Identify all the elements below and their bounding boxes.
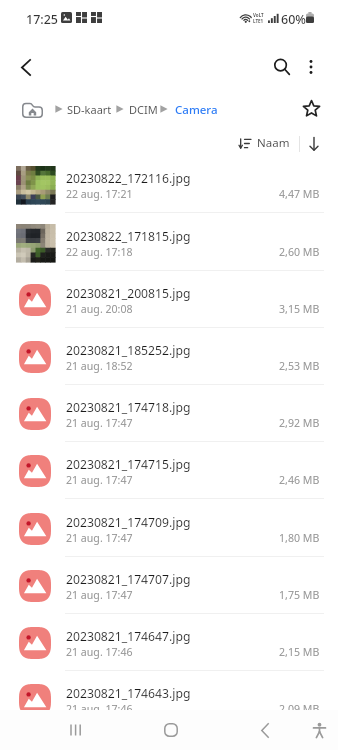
staticText: 2,53 MB xyxy=(279,359,320,373)
button[interactable]: 20230821_174715.jpg xyxy=(0,442,338,499)
button[interactable]: Sort direction xyxy=(300,130,328,158)
staticText: 20230821_174647.jpg xyxy=(66,628,191,645)
button[interactable]: Naam xyxy=(236,132,293,154)
staticText: 21 aug. 17:47 xyxy=(66,473,133,487)
button[interactable]: 20230821_200815.jpg xyxy=(0,271,338,328)
button[interactable]: 20230821_174643.jpg xyxy=(0,671,338,710)
button[interactable]: More options xyxy=(291,47,331,87)
staticText: 22 aug. 17:18 xyxy=(66,245,133,259)
staticText: 21 aug. 17:46 xyxy=(66,702,133,710)
staticText: 4,47 MB xyxy=(279,187,320,201)
staticText: 2,60 MB xyxy=(279,245,320,259)
button[interactable]: Home folder xyxy=(18,97,47,121)
staticText: 20230822_172116.jpg xyxy=(66,170,191,187)
staticText: 2,09 MB xyxy=(279,702,320,710)
button[interactable]: 20230822_172116.jpg xyxy=(0,156,338,213)
staticText: 21 aug. 17:47 xyxy=(66,531,133,545)
button[interactable]: 20230822_171815.jpg xyxy=(0,214,338,271)
staticText: 20230821_174643.jpg xyxy=(66,685,191,702)
staticText: 60% xyxy=(281,11,306,28)
staticText: DCIM xyxy=(129,102,158,117)
button[interactable]: Home xyxy=(156,715,186,745)
staticText: 21 aug. 17:46 xyxy=(66,645,133,659)
staticText: LTE1 xyxy=(253,18,264,23)
button[interactable]: 20230821_174709.jpg xyxy=(0,500,338,557)
staticText: 20230821_174707.jpg xyxy=(66,571,191,588)
button[interactable]: Back xyxy=(250,715,280,745)
staticText: 20230821_185252.jpg xyxy=(66,342,191,359)
staticText: 1,75 MB xyxy=(279,588,320,602)
button[interactable]: Recent apps xyxy=(61,715,91,745)
button[interactable]: 20230821_185252.jpg xyxy=(0,328,338,385)
staticText: 21 aug. 17:47 xyxy=(66,588,133,602)
button[interactable]: 20230821_174707.jpg xyxy=(0,557,338,614)
staticText: Camera xyxy=(175,102,218,118)
button[interactable]: 20230821_174647.jpg xyxy=(0,614,338,671)
button[interactable]: DCIM xyxy=(129,102,158,117)
staticText: 2,46 MB xyxy=(279,473,320,487)
staticText: 20230821_174709.jpg xyxy=(66,514,191,531)
staticText: 1,80 MB xyxy=(279,531,320,545)
staticText: 2,92 MB xyxy=(279,416,320,430)
button[interactable]: SD-kaart xyxy=(67,102,112,117)
button[interactable]: Add to favourites xyxy=(297,94,325,122)
staticText: 20230821_174718.jpg xyxy=(66,399,191,416)
button[interactable]: 20230821_174718.jpg xyxy=(0,385,338,442)
staticText: 3,15 MB xyxy=(279,302,320,316)
staticText: 21 aug. 18:52 xyxy=(66,359,133,373)
staticText: Naam xyxy=(257,135,290,151)
staticText: 20230821_174715.jpg xyxy=(66,456,191,473)
button[interactable]: Back xyxy=(6,47,46,87)
staticText: SD-kaart xyxy=(67,102,112,117)
staticText: 21 aug. 20:08 xyxy=(66,302,133,316)
button[interactable]: Search xyxy=(262,47,302,87)
staticText: 2,15 MB xyxy=(279,645,320,659)
staticText: 20230822_171815.jpg xyxy=(66,228,191,245)
button[interactable]: Camera xyxy=(175,102,218,118)
staticText: 21 aug. 17:47 xyxy=(66,416,133,430)
staticText: VoLT xyxy=(253,12,264,18)
staticText: 17:25 xyxy=(26,11,59,28)
staticText: 20230821_200815.jpg xyxy=(66,285,191,302)
button[interactable]: Accessibility xyxy=(304,715,334,745)
staticText: 22 aug. 17:21 xyxy=(66,187,133,201)
